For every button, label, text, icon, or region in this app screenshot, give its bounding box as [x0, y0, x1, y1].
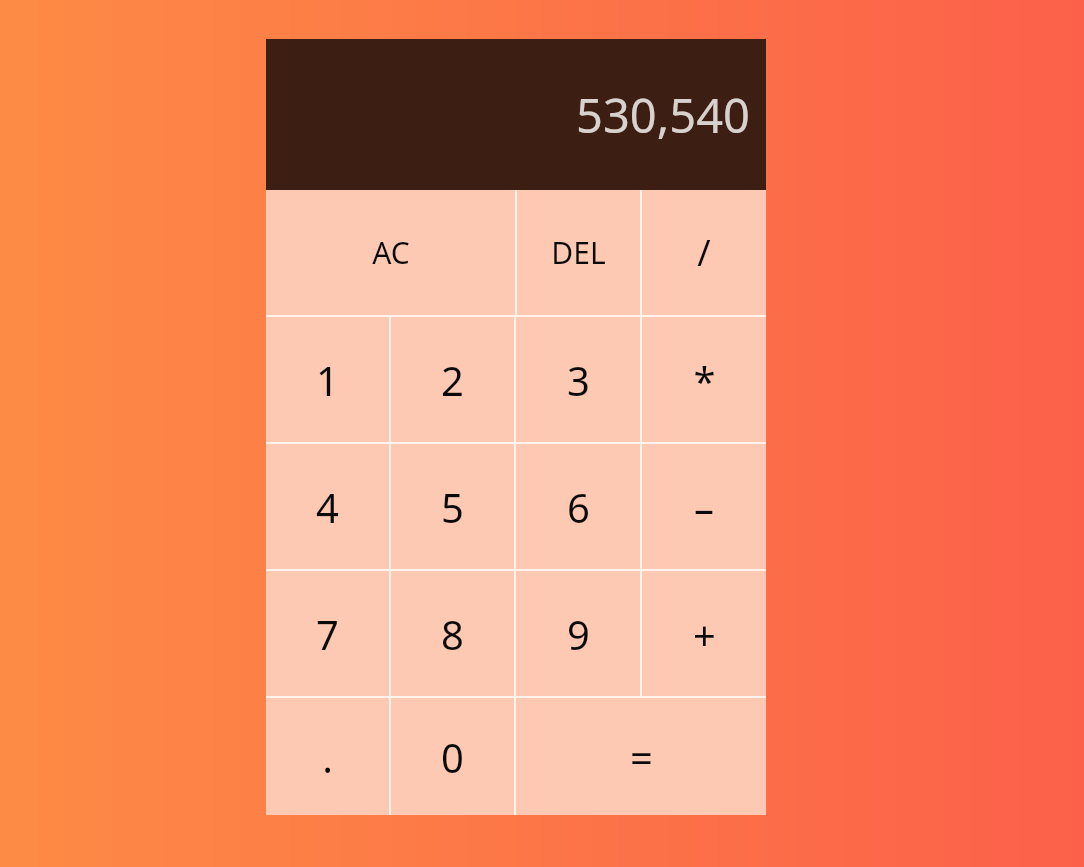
button[interactable]: DEL	[517, 190, 640, 315]
button[interactable]: /	[642, 190, 766, 315]
button[interactable]: –	[642, 444, 766, 569]
staticText: 7	[316, 607, 339, 661]
staticText: 9	[567, 607, 590, 661]
staticText: 1	[316, 353, 339, 407]
button[interactable]: =	[516, 698, 766, 815]
staticText: /	[697, 228, 711, 277]
button[interactable]: *	[642, 317, 766, 442]
staticText: AC	[372, 232, 410, 273]
staticText: *	[693, 353, 716, 407]
staticText: 6	[567, 480, 590, 534]
button[interactable]: 1	[266, 317, 389, 442]
button[interactable]: 4	[266, 444, 389, 569]
staticText: +	[693, 607, 716, 661]
staticText: 8	[441, 607, 464, 661]
staticText: 5	[441, 480, 464, 534]
button[interactable]: 5	[391, 444, 514, 569]
button[interactable]: 0	[391, 698, 514, 815]
staticText: .	[322, 730, 333, 784]
staticText: DEL	[551, 232, 606, 273]
staticText: 3	[567, 353, 590, 407]
button[interactable]: +	[642, 571, 766, 696]
button[interactable]: 8	[391, 571, 514, 696]
staticText: –	[694, 480, 714, 534]
button[interactable]: 2	[391, 317, 514, 442]
staticText: 0	[441, 730, 464, 784]
staticText: =	[630, 730, 653, 784]
button[interactable]: 6	[516, 444, 640, 569]
staticText: 530,540	[576, 83, 750, 147]
button[interactable]: AC	[266, 190, 515, 315]
button[interactable]: 3	[516, 317, 640, 442]
staticText: 4	[316, 480, 339, 534]
staticText: 2	[441, 353, 464, 407]
button[interactable]: 7	[266, 571, 389, 696]
button[interactable]: 9	[516, 571, 640, 696]
button[interactable]: .	[266, 698, 389, 815]
